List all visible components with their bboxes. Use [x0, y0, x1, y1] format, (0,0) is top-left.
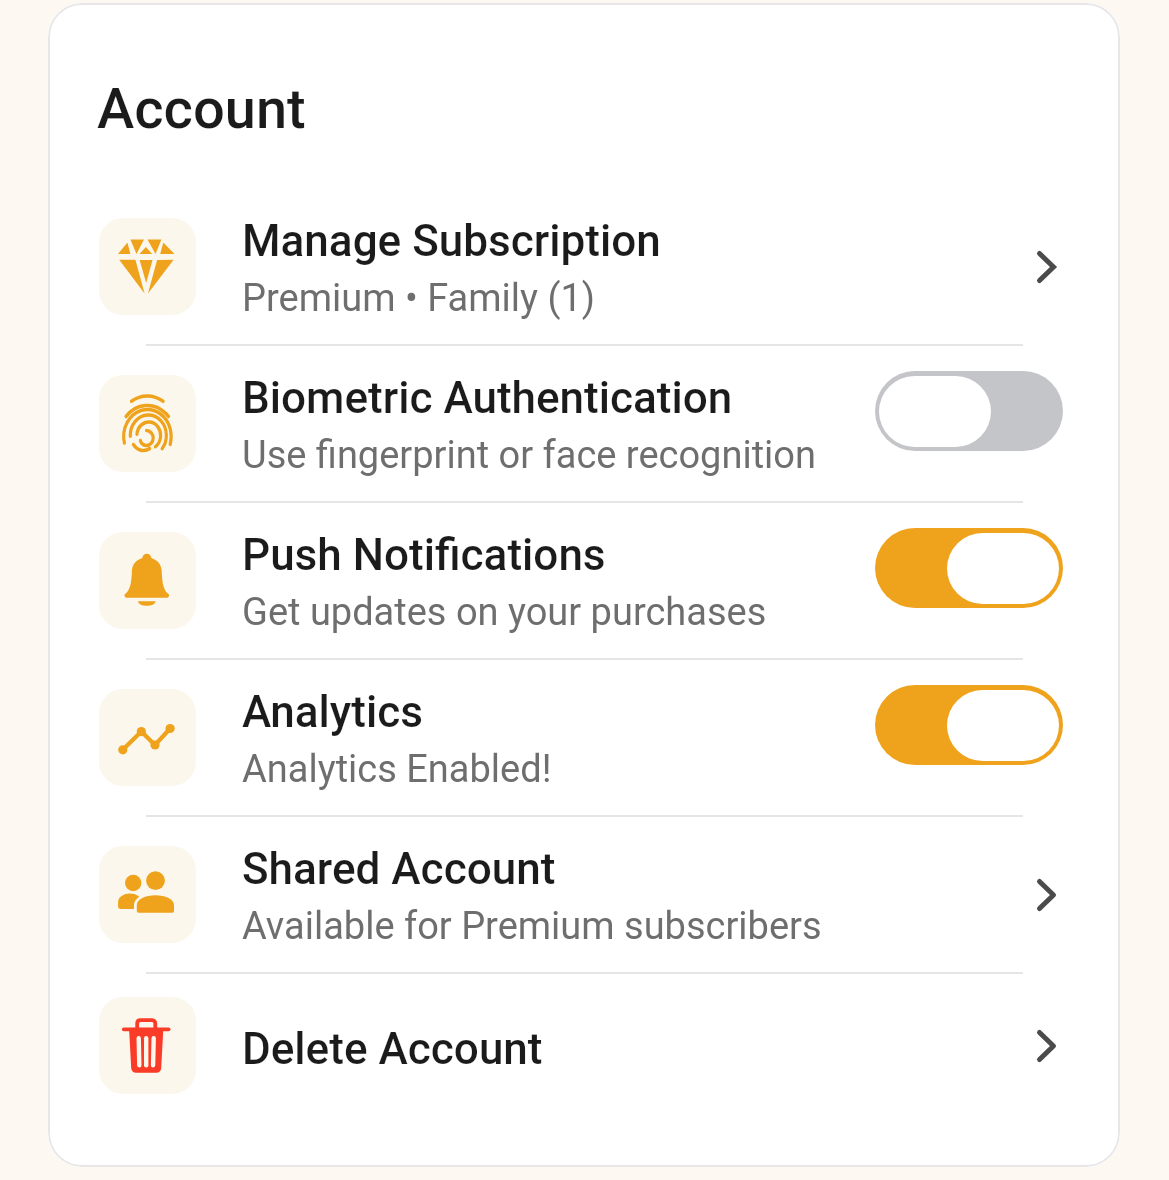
staticText: Analytics Enabled! [242, 746, 552, 792]
button[interactable]: Push Notifications [48, 503, 1120, 658]
staticText: Push Notifications [242, 529, 606, 581]
button[interactable]: Analytics [48, 660, 1120, 815]
button[interactable]: Biometric Authentication [48, 346, 1120, 501]
staticText: Biometric Authentication [242, 372, 733, 424]
button[interactable]: Shared Account [48, 817, 1120, 972]
other: Open Manage Subscription [1029, 237, 1063, 297]
other: Open Delete Account [1029, 1016, 1063, 1076]
staticText: Use fingerprint or face recognition [242, 432, 816, 478]
button[interactable]: Switch off [875, 371, 1063, 451]
button[interactable]: Switch on [875, 685, 1063, 765]
button[interactable]: Delete Account [48, 974, 1120, 1129]
button[interactable]: Switch on [875, 528, 1063, 608]
button[interactable]: Manage Subscription [48, 189, 1120, 344]
staticText: Available for Premium subscribers [242, 903, 822, 949]
other: Open Shared Account [1029, 865, 1063, 925]
staticText: Get updates on your purchases [242, 589, 767, 635]
staticText: Account [97, 77, 306, 141]
staticText: Premium • Family (1) [242, 275, 596, 321]
staticText: Shared Account [242, 843, 556, 895]
staticText: Delete Account [242, 1023, 543, 1075]
staticText: Analytics [242, 686, 423, 738]
staticText: Manage Subscription [242, 215, 661, 267]
